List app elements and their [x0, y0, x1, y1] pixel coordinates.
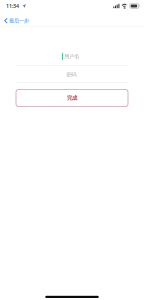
staticText: 用户名 [64, 53, 79, 60]
staticText: 11:34 [6, 2, 19, 10]
staticText: 最后一步 [9, 17, 29, 24]
staticText: 密码 [66, 71, 76, 78]
staticText: 完成 [67, 95, 77, 101]
button[interactable]: 完成 [16, 89, 128, 106]
button[interactable]: 最后一步 [0, 14, 35, 28]
